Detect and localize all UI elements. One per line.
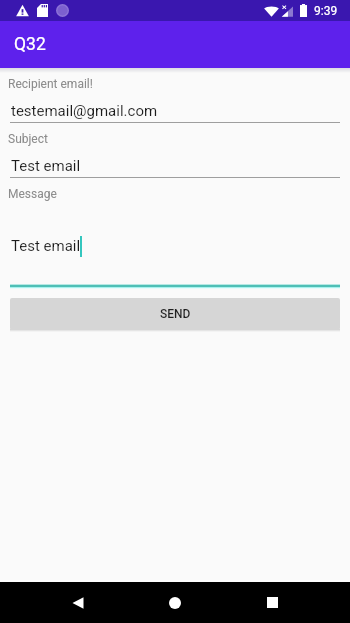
- staticText: Recipient email!: [8, 77, 93, 91]
- staticText: SEND: [160, 307, 191, 321]
- staticText: testemail@gmail.com: [11, 102, 158, 120]
- staticText: Subject: [8, 132, 48, 146]
- button[interactable]: Recents: [248, 582, 296, 623]
- button[interactable]: SEND: [10, 298, 340, 330]
- button[interactable]: Back: [54, 582, 102, 623]
- staticText: Test email: [11, 157, 81, 175]
- staticText: 9:39: [314, 4, 338, 18]
- staticText: Message: [8, 187, 57, 201]
- staticText: Test email: [11, 237, 81, 255]
- button[interactable]: Home: [151, 582, 199, 623]
- staticText: Q32: [14, 34, 46, 55]
